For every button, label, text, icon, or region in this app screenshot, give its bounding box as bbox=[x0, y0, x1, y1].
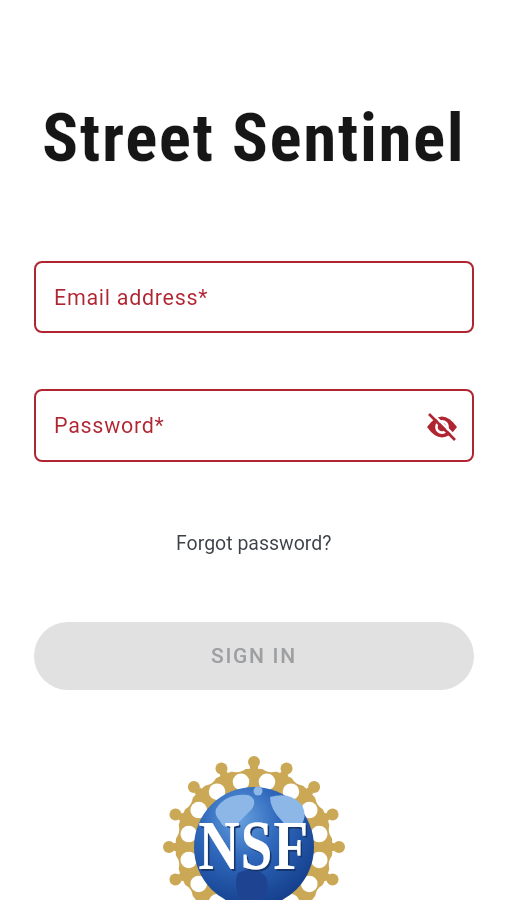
button[interactable]: Email address* bbox=[34, 261, 474, 333]
staticText: Street Sentinel bbox=[42, 99, 466, 178]
staticText: Forgot password? bbox=[176, 532, 332, 555]
staticText: SIGN IN bbox=[211, 644, 297, 669]
staticText: Email address* bbox=[54, 285, 209, 310]
button[interactable]: Forgot password? bbox=[174, 530, 334, 557]
button[interactable]: Password* bbox=[34, 389, 474, 462]
button[interactable]: SIGN IN bbox=[34, 622, 474, 690]
staticText: Password* bbox=[54, 413, 165, 438]
button[interactable] bbox=[425, 409, 459, 443]
